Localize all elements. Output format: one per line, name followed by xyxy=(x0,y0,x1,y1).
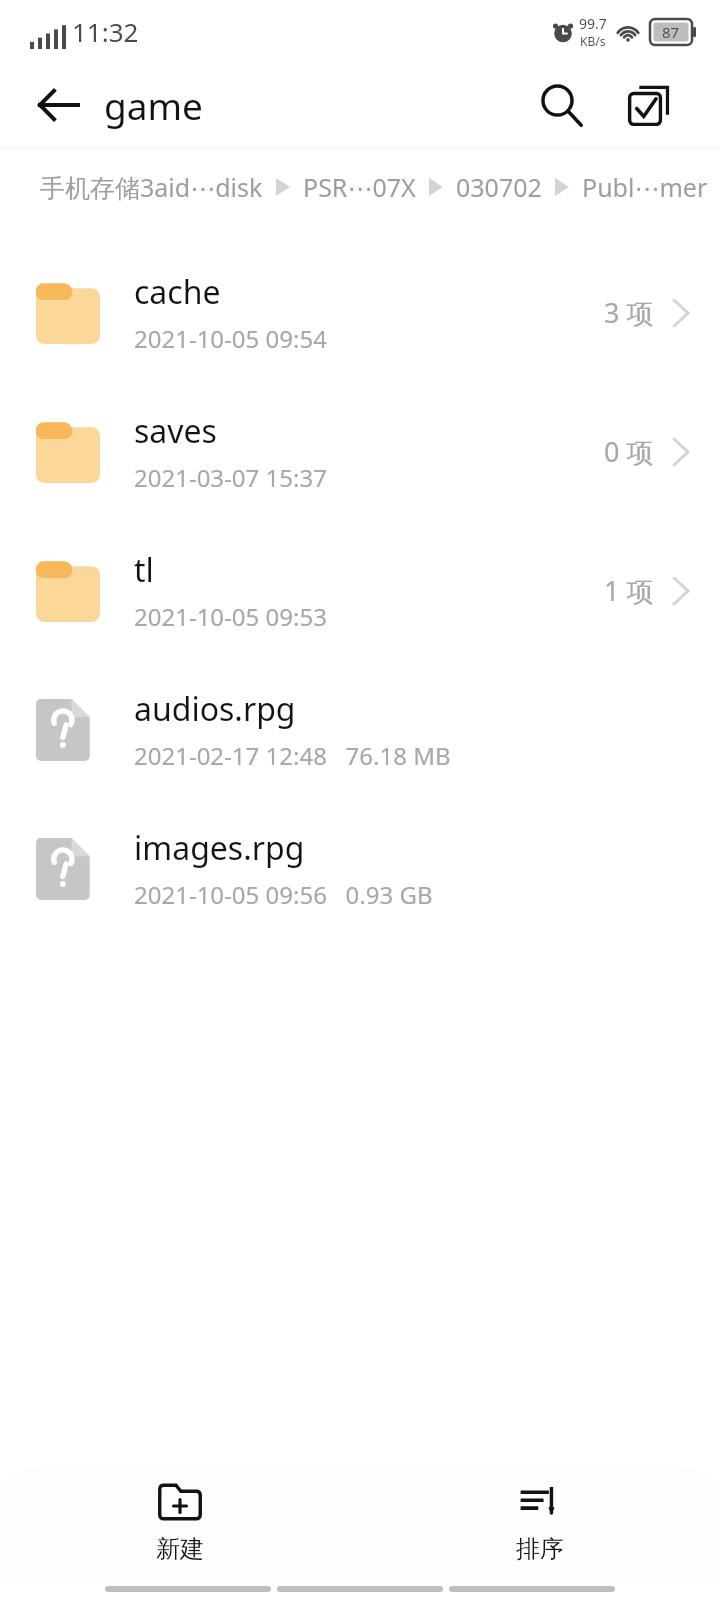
staticText: 2021-10-05 09:54 xyxy=(134,322,327,355)
button[interactable]: 030702 xyxy=(456,170,542,204)
button[interactable]: Select items xyxy=(614,70,684,140)
button[interactable]: PSR⋯07X xyxy=(303,170,416,204)
staticText: 0 项 xyxy=(604,433,654,470)
button[interactable]: audios.rpg xyxy=(0,660,720,799)
staticText: 11:32 xyxy=(72,14,139,49)
button[interactable]: 排序 xyxy=(360,1472,720,1572)
staticText: 99.7 xyxy=(579,14,607,33)
staticText: 新建 xyxy=(156,1534,204,1564)
staticText: images.rpg xyxy=(134,826,305,870)
staticText: 87 xyxy=(662,22,680,42)
staticText: saves xyxy=(134,409,217,453)
button[interactable]: 手机存储3aid⋯disk xyxy=(40,170,263,204)
staticText: 3 项 xyxy=(604,294,654,331)
button[interactable]: saves xyxy=(0,382,720,521)
staticText: cache xyxy=(134,270,221,314)
button[interactable]: 新建 xyxy=(0,1472,360,1572)
staticText: game xyxy=(104,80,203,130)
button[interactable]: Search xyxy=(526,70,596,140)
button[interactable]: cache xyxy=(0,243,720,382)
button[interactable]: Back xyxy=(26,73,90,137)
staticText: 2021-03-07 15:37 xyxy=(134,461,327,494)
staticText: 2021-10-05 09:56 0.93 GB xyxy=(134,878,433,911)
staticText: audios.rpg xyxy=(134,687,296,731)
button[interactable]: Publ⋯mer xyxy=(582,170,708,204)
staticText: 排序 xyxy=(516,1534,564,1564)
staticText: 1 项 xyxy=(604,572,654,609)
staticText: tl xyxy=(134,548,154,592)
staticText: 2021-02-17 12:48 76.18 MB xyxy=(134,739,451,772)
button[interactable]: tl xyxy=(0,521,720,660)
button[interactable]: images.rpg xyxy=(0,799,720,938)
staticText: 2021-10-05 09:53 xyxy=(134,600,327,633)
staticText: KB/s xyxy=(580,33,606,49)
